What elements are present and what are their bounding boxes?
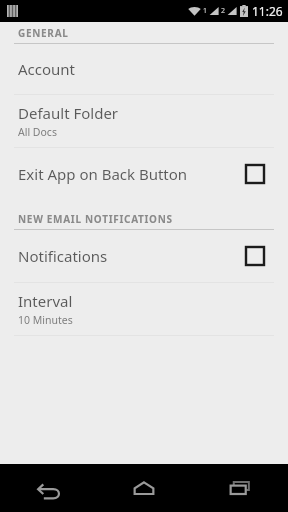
staticText: Interval (18, 291, 73, 311)
button[interactable]: Account (0, 44, 288, 94)
other: Exit App on Back Button (246, 165, 264, 183)
button[interactable]: Exit App on Back Button (0, 148, 288, 200)
button[interactable]: Home (96, 464, 192, 512)
staticText: 10 Minutes (18, 313, 73, 327)
button[interactable]: Notifications (0, 230, 288, 282)
staticText: Notifications (18, 246, 246, 266)
staticText: Exit App on Back Button (18, 164, 246, 184)
staticText: 2 (221, 6, 226, 16)
staticText: All Docs (18, 125, 57, 139)
staticText: GENERAL (18, 26, 69, 40)
button[interactable]: Interval (0, 283, 288, 335)
staticText: 11:26 (252, 3, 283, 19)
staticText: 1 (203, 6, 208, 16)
staticText: Account (18, 59, 76, 79)
button[interactable]: Recent apps (192, 464, 288, 512)
staticText: NEW EMAIL NOTIFICATIONS (18, 212, 173, 226)
button[interactable]: Default Folder (0, 95, 288, 147)
button[interactable]: Back (0, 464, 96, 512)
other: Notifications (246, 247, 264, 265)
staticText: Default Folder (18, 103, 119, 123)
